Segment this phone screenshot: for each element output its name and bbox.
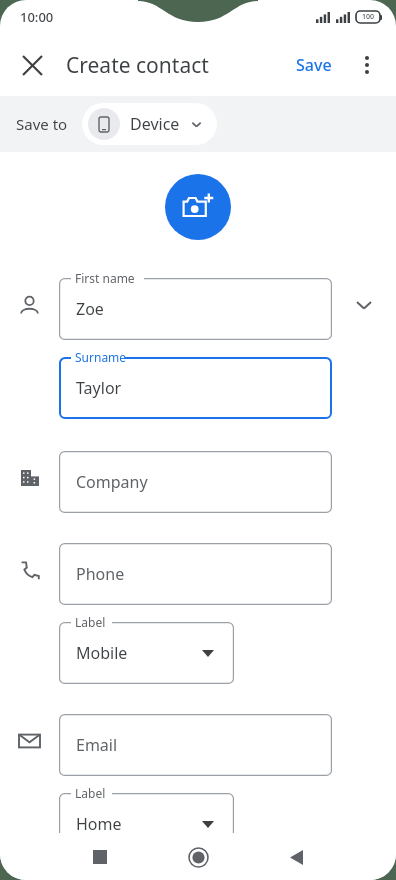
button[interactable]: More options [344,42,390,88]
staticText: Label [75,785,106,801]
button[interactable]: Phone [59,535,332,605]
staticText: Label [75,614,106,630]
staticText: Save to [16,114,68,134]
button[interactable]: Add photo [165,174,231,240]
button[interactable]: Company [59,443,332,513]
button[interactable]: Back [274,835,318,879]
staticText: Zoe [76,298,104,320]
button[interactable]: Email [59,706,332,776]
staticText: 10:00 [20,8,54,26]
staticText: Device [130,113,180,135]
button[interactable]: Device [82,103,217,145]
button[interactable]: Expand name fields [332,274,395,336]
staticText: Mobile [76,642,128,664]
staticText: Email [76,734,118,756]
button[interactable]: Recent apps [78,835,122,879]
button[interactable]: First name [59,270,332,340]
staticText: 100 [362,12,375,22]
staticText: Save [296,54,332,76]
button[interactable]: Close [8,41,56,89]
staticText: Surname [75,349,127,365]
button[interactable]: Label [59,614,234,684]
staticText: Company [76,471,148,493]
staticText: Create contact [66,51,209,80]
button[interactable]: Surname [59,349,332,419]
staticText: First name [75,270,135,286]
button[interactable]: Save [290,48,338,82]
staticText: Home [76,813,122,835]
button[interactable]: Label [59,785,234,855]
staticText: Phone [76,563,125,585]
staticText: Taylor [76,377,122,399]
button[interactable]: Home [176,835,220,879]
